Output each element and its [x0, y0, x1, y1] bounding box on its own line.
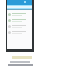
button[interactable]	[7, 29, 32, 35]
button[interactable]	[7, 17, 32, 23]
button[interactable]	[7, 11, 32, 17]
button[interactable]	[7, 23, 32, 29]
